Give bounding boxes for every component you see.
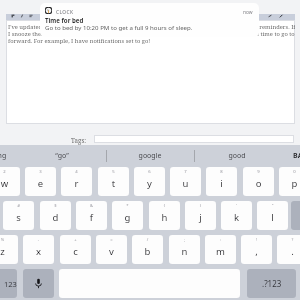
staticText: h — [149, 211, 180, 224]
staticText: " — [257, 203, 288, 209]
button[interactable]: Dictation — [23, 269, 54, 298]
button[interactable]: : — [205, 235, 236, 264]
button[interactable]: # — [3, 201, 34, 230]
button[interactable]: 3 — [25, 167, 56, 196]
button[interactable]: = — [96, 235, 127, 264]
button[interactable]: “go” — [18, 145, 106, 167]
button[interactable]: $ — [40, 201, 71, 230]
button[interactable]: good — [193, 145, 281, 167]
staticText: r — [61, 177, 92, 190]
staticText: ; — [169, 237, 200, 243]
button[interactable]: CLOCK — [40, 3, 259, 37]
staticText: y — [134, 177, 165, 190]
staticText: k — [221, 211, 252, 224]
staticText: w — [0, 177, 20, 190]
staticText: u — [170, 177, 201, 190]
staticText: s — [3, 211, 34, 224]
button[interactable]: google — [106, 145, 194, 167]
staticText: now — [243, 9, 253, 16]
button[interactable]: 6 — [134, 167, 165, 196]
button[interactable]: " — [257, 201, 288, 230]
staticText: z — [0, 245, 18, 258]
staticText: 2 — [0, 169, 20, 175]
staticText: x — [23, 245, 54, 258]
staticText: ) — [185, 203, 216, 209]
staticText: * — [112, 203, 143, 209]
button[interactable] — [94, 135, 294, 143]
staticText: d — [40, 211, 71, 224]
button[interactable]: 9 — [243, 167, 274, 196]
button[interactable]: * — [112, 201, 143, 230]
staticText: t — [98, 177, 129, 190]
button[interactable]: ! — [241, 235, 272, 264]
button[interactable] — [291, 201, 300, 230]
staticText: o — [243, 177, 274, 190]
staticText: . — [277, 245, 300, 258]
button[interactable]: 5 — [98, 167, 129, 196]
staticText: m — [205, 245, 236, 258]
staticText: BACKGROUND — [293, 151, 300, 161]
button[interactable]: 4 — [61, 167, 92, 196]
staticText: 123 — [4, 279, 17, 289]
staticText: ! — [241, 237, 272, 243]
button[interactable]: ; — [169, 235, 200, 264]
staticText: f — [76, 211, 107, 224]
staticText: 6 — [134, 169, 165, 175]
staticText: ( — [149, 203, 180, 209]
staticText: , — [241, 245, 272, 258]
staticText: b — [132, 245, 163, 258]
staticText: google — [106, 151, 194, 161]
staticText: $ — [40, 203, 71, 209]
staticText: 0 — [279, 169, 300, 175]
button[interactable]: + — [60, 235, 91, 264]
staticText: 8 — [206, 169, 237, 175]
staticText: j — [185, 211, 216, 224]
button[interactable]: / — [132, 235, 163, 264]
staticText: 3 — [25, 169, 56, 175]
staticText: “go” — [18, 151, 106, 161]
button[interactable]: ) — [185, 201, 216, 230]
staticText: challenging — [0, 151, 7, 161]
staticText: g — [112, 211, 143, 224]
button[interactable]: 0 — [279, 167, 300, 196]
button[interactable]: ( — [149, 201, 180, 230]
button[interactable]: % — [0, 235, 18, 264]
staticText: ? — [277, 237, 300, 243]
staticText: 5 — [98, 169, 129, 175]
staticText: c — [60, 245, 91, 258]
staticText: 9 — [243, 169, 274, 175]
staticText: + — [60, 237, 91, 243]
staticText: Time for bed — [45, 16, 84, 24]
staticText: Tags: — [71, 136, 86, 144]
staticText: I've updated the way I deal with notific… — [8, 23, 295, 45]
staticText: n — [169, 245, 200, 258]
staticText: e — [25, 177, 56, 190]
staticText: = — [96, 237, 127, 243]
button[interactable]: 2 — [0, 167, 20, 196]
staticText: / — [132, 237, 163, 243]
staticText: 7 — [170, 169, 201, 175]
staticText: p — [279, 177, 300, 190]
staticText: & — [76, 203, 107, 209]
staticText: % — [0, 237, 18, 243]
button[interactable]: ? — [277, 235, 300, 264]
staticText: v — [96, 245, 127, 258]
staticText: 4 — [61, 169, 92, 175]
button[interactable]: 7 — [170, 167, 201, 196]
staticText: l — [257, 211, 288, 224]
staticText: CLOCK — [56, 9, 74, 16]
staticText: Go to bed by 10:20 PM to get a full 9 ho… — [45, 23, 193, 31]
button[interactable]: 8 — [206, 167, 237, 196]
staticText: i — [206, 177, 237, 190]
button[interactable]: 123 — [0, 269, 17, 298]
button[interactable]: - — [23, 235, 54, 264]
button[interactable]: ' — [221, 201, 252, 230]
staticText: # — [3, 203, 34, 209]
button[interactable]: & — [76, 201, 107, 230]
staticText: .?123 — [262, 278, 282, 289]
button[interactable]: .?123 — [247, 269, 296, 298]
